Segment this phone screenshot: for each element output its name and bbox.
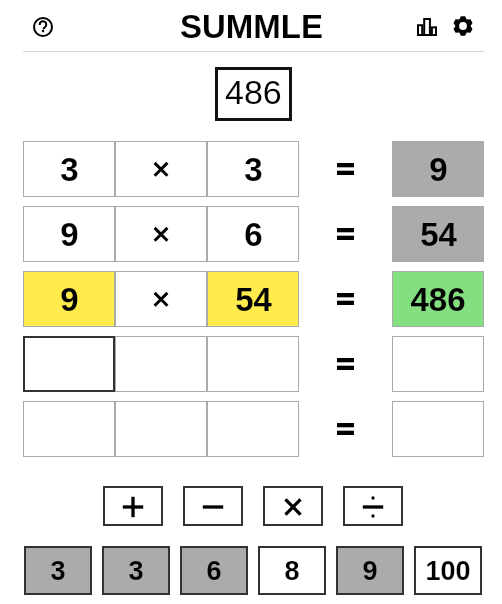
staticText: 486 — [410, 281, 466, 318]
button[interactable] — [115, 271, 207, 327]
button[interactable] — [115, 336, 207, 392]
staticText: 6 — [244, 216, 263, 253]
staticText: 8 — [284, 556, 300, 586]
button[interactable]: 9 — [336, 546, 404, 595]
button[interactable] — [207, 336, 299, 392]
button[interactable]: 9 — [392, 141, 484, 197]
staticText: 3 — [244, 151, 263, 188]
button[interactable]: 6 — [207, 206, 299, 262]
staticText: 6 — [206, 556, 222, 586]
button[interactable]: 3 — [24, 546, 92, 595]
staticText: 9 — [60, 281, 79, 318]
button[interactable]: 8 — [258, 546, 326, 595]
button[interactable] — [23, 336, 115, 392]
staticText: 486 — [225, 73, 282, 111]
button[interactable]: 9 — [23, 206, 115, 262]
button[interactable] — [115, 401, 207, 457]
button[interactable]: 3 — [207, 141, 299, 197]
staticText: 9 — [362, 556, 378, 586]
button[interactable] — [23, 401, 115, 457]
button[interactable]: 3 — [102, 546, 170, 595]
button[interactable]: 6 — [180, 546, 248, 595]
button[interactable]: 486 — [392, 271, 484, 327]
button[interactable]: 9 — [23, 271, 115, 327]
button[interactable]: Multiply — [263, 486, 323, 526]
button[interactable] — [115, 141, 207, 197]
button[interactable]: Statistics — [412, 12, 442, 42]
button[interactable]: Settings — [448, 11, 478, 41]
staticText: 100 — [425, 556, 471, 586]
button[interactable] — [392, 336, 484, 392]
button[interactable] — [207, 401, 299, 457]
button[interactable] — [392, 401, 484, 457]
button[interactable]: 100 — [414, 546, 482, 595]
button[interactable]: 54 — [207, 271, 299, 327]
button[interactable] — [115, 206, 207, 262]
staticText: 3 — [128, 556, 144, 586]
staticText: 9 — [60, 216, 79, 253]
button[interactable]: 3 — [23, 141, 115, 197]
button[interactable]: 486 — [215, 67, 292, 121]
staticText: 3 — [60, 151, 79, 188]
staticText: 9 — [429, 151, 448, 188]
button[interactable]: Minus — [183, 486, 243, 526]
button[interactable]: 54 — [392, 206, 484, 262]
staticText: 54 — [420, 216, 457, 253]
staticText: 3 — [50, 556, 66, 586]
button[interactable]: Plus — [103, 486, 163, 526]
staticText: 54 — [235, 281, 272, 318]
button[interactable]: Help — [27, 11, 59, 43]
button[interactable]: Divide — [343, 486, 403, 526]
staticText: SUMMLE — [180, 8, 323, 45]
